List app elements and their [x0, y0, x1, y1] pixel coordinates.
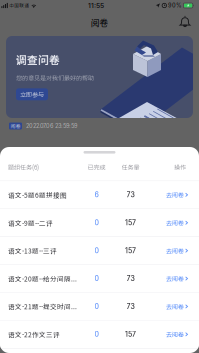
staticText: 73: [126, 274, 134, 283]
staticText: 语文-9题--二评: [8, 218, 53, 228]
staticText: 6: [94, 191, 98, 199]
staticText: 操作: [174, 163, 186, 172]
staticText: 题组任务(6): [8, 163, 39, 172]
staticText: 去阅卷: [166, 330, 184, 339]
staticText: 0: [94, 219, 98, 227]
staticText: 去阅卷: [166, 274, 184, 283]
button[interactable]: 立即参与: [16, 88, 48, 100]
staticText: 语文-5题6题拼接图: [8, 190, 67, 200]
staticText: 0: [94, 330, 98, 339]
staticText: 0: [94, 302, 98, 311]
staticText: 中国联通: [9, 2, 29, 9]
button[interactable]: 语文-21题--提交时间...: [0, 293, 199, 320]
staticText: 语文-21题--提交时间...: [8, 302, 77, 311]
staticText: 0: [94, 246, 98, 255]
staticText: 157: [125, 246, 136, 255]
staticText: 90%: [168, 2, 182, 9]
button[interactable]: 语文-22作文三评: [0, 321, 199, 348]
button[interactable]: 语文-5题6题拼接图: [0, 181, 199, 208]
staticText: 2022.07.06 23:59:59: [26, 123, 77, 129]
staticText: 已完成: [87, 163, 105, 172]
staticText: 语文-22作文三评: [8, 330, 60, 339]
staticText: 去阅卷: [166, 302, 184, 311]
staticText: 去阅卷: [166, 190, 184, 199]
staticText: 去阅卷: [166, 218, 184, 227]
button[interactable]: 语文-9题--二评: [0, 209, 199, 236]
staticText: 立即参与: [20, 90, 44, 99]
staticText: 157: [125, 330, 136, 339]
staticText: 0: [94, 274, 98, 283]
staticText: 73: [126, 302, 134, 311]
staticText: 11:55: [88, 1, 104, 10]
staticText: 调查问卷: [16, 52, 60, 67]
button[interactable]: 语文-20题--给分间隔...: [0, 265, 199, 292]
staticText: 任务量: [121, 163, 139, 172]
staticText: 157: [125, 219, 136, 227]
staticText: 语文-13题--三评: [8, 246, 57, 255]
staticText: 去阅卷: [166, 246, 184, 255]
staticText: 阅卷: [10, 122, 20, 130]
staticText: 阅卷: [90, 16, 108, 29]
button[interactable]: 通知: [174, 11, 196, 33]
staticText: 73: [126, 191, 134, 199]
staticText: 语文-20题--给分间隔...: [8, 274, 77, 283]
staticText: 您的意见是对我们最好的帮助: [16, 73, 94, 82]
button[interactable]: 语文-13题--三评: [0, 237, 199, 264]
